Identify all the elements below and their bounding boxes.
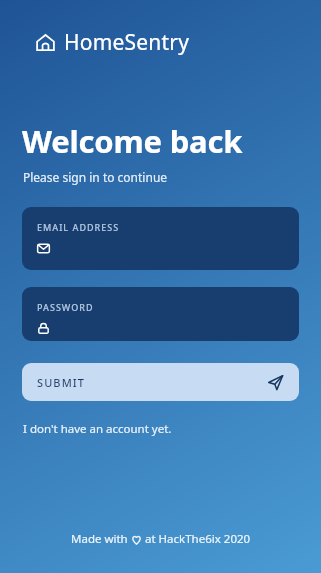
staticText: at HackThe6ix 2020 <box>142 531 251 547</box>
staticText: Please sign in to continue <box>23 169 168 185</box>
staticText: Made with <box>71 531 131 547</box>
button[interactable]: EMAIL ADDRESS <box>22 207 299 270</box>
staticText: SUBMIT <box>37 375 86 390</box>
staticText: PASSWORD <box>37 301 94 313</box>
button[interactable]: SUBMIT <box>22 363 299 401</box>
staticText: HomeSentry <box>64 28 190 57</box>
button[interactable]: I don't have an account yet. <box>23 421 172 437</box>
button[interactable]: PASSWORD <box>22 287 299 341</box>
staticText: EMAIL ADDRESS <box>37 221 120 233</box>
staticText: Welcome back <box>22 120 243 162</box>
button[interactable]: HomeSentry <box>35 28 190 57</box>
